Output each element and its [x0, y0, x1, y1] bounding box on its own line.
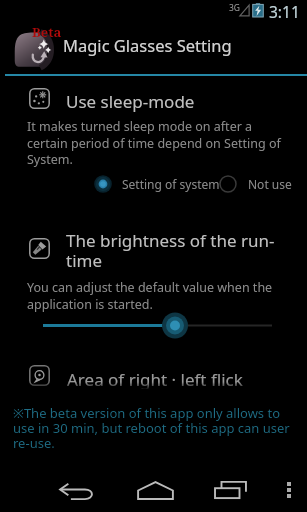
button[interactable]: Recent apps	[207, 466, 255, 512]
button[interactable]: More options	[270, 471, 307, 509]
staticText: 3G	[229, 2, 241, 14]
staticText: Beta	[32, 23, 62, 41]
staticText: ※The beta version of this app only allow…	[13, 404, 291, 452]
staticText: Magic Glasses Setting	[63, 34, 232, 56]
button[interactable]: Setting of system	[94, 175, 220, 193]
button[interactable]: Back	[53, 467, 101, 512]
staticText: You can adjust the default value when th…	[27, 279, 289, 312]
staticText: Not use	[248, 176, 292, 192]
staticText: Setting of system	[122, 176, 220, 192]
staticText: Area of right · left flick	[67, 368, 243, 391]
staticText: It makes turned sleep mode on after a ce…	[27, 118, 287, 167]
staticText: 3:11	[269, 1, 300, 20]
button[interactable]: Home	[131, 466, 179, 512]
staticText: Use sleep-mode	[66, 90, 195, 113]
button[interactable]: Not use	[219, 175, 292, 193]
staticText: The brightness of the run-time	[66, 229, 291, 272]
button[interactable]: Brightness slider	[30, 312, 285, 338]
